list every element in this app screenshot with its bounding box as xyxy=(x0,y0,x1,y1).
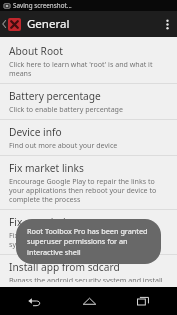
staticText: Install app from sdcard xyxy=(9,260,120,274)
button[interactable]: Fix permissions xyxy=(0,210,177,254)
staticText: Encourage Google Play to repair the link… xyxy=(9,176,169,204)
staticText: General xyxy=(27,16,70,32)
button[interactable]: Install app from sdcard xyxy=(0,255,177,287)
staticText: Click to enable battery percentage xyxy=(9,104,123,114)
button[interactable]: Home xyxy=(68,287,110,315)
button[interactable]: Device info xyxy=(0,120,177,155)
button[interactable]: Recent apps xyxy=(122,287,164,315)
staticText: Click here to learn what 'root' is and w… xyxy=(9,59,169,78)
staticText: Fix the linux permissions on your device… xyxy=(9,230,169,249)
button[interactable]: Back xyxy=(13,287,55,315)
staticText: Fix permissions xyxy=(9,215,84,229)
staticText: Bypass the android security system and i… xyxy=(9,275,169,282)
staticText: About Root xyxy=(9,44,63,58)
staticText: Root Toolbox Pro has been granted superu… xyxy=(27,226,150,257)
staticText: Device info xyxy=(9,125,62,139)
button[interactable]: About Root xyxy=(0,39,177,83)
staticText: Battery percentage xyxy=(9,89,101,103)
staticText: Find out more about your device xyxy=(9,140,118,150)
button[interactable]: More options xyxy=(157,11,177,37)
button[interactable]: Navigate up xyxy=(0,11,21,37)
staticText: Fix market links xyxy=(9,161,84,175)
button[interactable]: Fix market links xyxy=(0,156,177,209)
button[interactable]: Battery percentage xyxy=(0,84,177,119)
staticText: Saving screenshot... xyxy=(13,1,72,10)
